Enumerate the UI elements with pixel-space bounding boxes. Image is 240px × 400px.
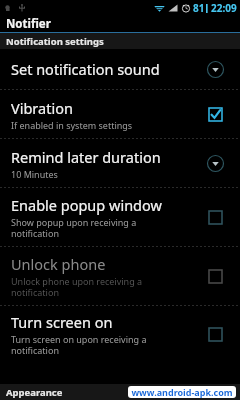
button[interactable]: Set notification sound [0,49,240,89]
button[interactable]: Turn screen on [0,306,240,362]
staticText: www.android-apk.com [131,386,233,398]
staticText: Unlock phone [11,254,106,274]
staticText: 22:09 [211,1,237,15]
button[interactable]: Open options [205,59,225,79]
button[interactable]: Enable popup window [0,188,240,246]
staticText: Unlock phone upon receiving a notificati… [11,275,143,298]
staticText: 81 [193,1,205,15]
staticText: Vibration [11,98,73,118]
button[interactable]: Unchecked [205,324,225,344]
staticText: Remind later duration [11,147,161,167]
button[interactable]: Unlock phone [0,247,240,305]
button[interactable]: Remind later duration [0,139,240,187]
staticText: Notifier [6,16,51,32]
button[interactable]: Vibration [0,90,240,138]
staticText: Set notification sound [11,59,160,79]
button[interactable]: Unchecked [205,266,225,286]
staticText: Enable popup window [11,195,162,215]
staticText: Turn screen on [11,312,113,332]
staticText: Appearance [6,386,63,399]
staticText: Turn screen on upon receiving a notifica… [11,333,147,356]
staticText: Show popup upon receiving a notification [11,216,137,239]
staticText: Notification settings [6,35,104,48]
button[interactable]: Checked [205,104,225,124]
staticText: If enabled in system settings [11,119,133,131]
staticText: 10 Minutes [11,168,58,180]
button[interactable]: Unchecked [205,207,225,227]
button[interactable]: Open options [205,153,225,173]
